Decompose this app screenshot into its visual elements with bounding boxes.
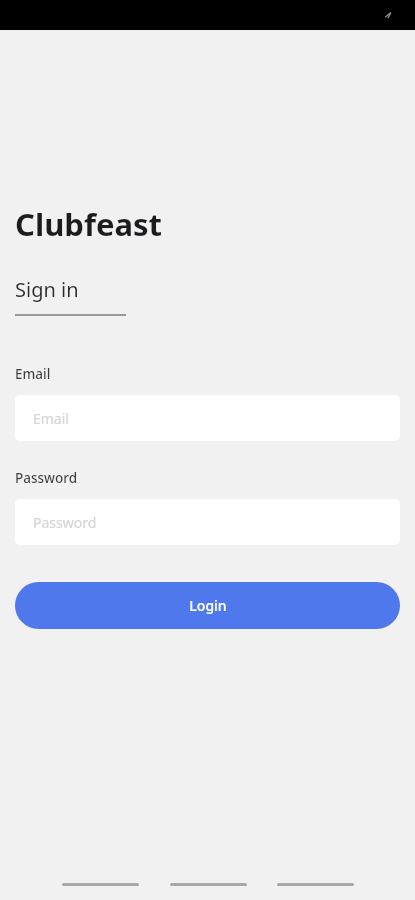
staticText: Email <box>33 409 69 428</box>
button[interactable]: Navigation <box>277 883 354 886</box>
button[interactable]: Login <box>15 582 400 629</box>
staticText: Email <box>15 365 51 383</box>
button[interactable]: Email <box>15 395 400 441</box>
button[interactable]: Password <box>15 499 400 545</box>
staticText: Sign in <box>15 276 79 303</box>
staticText: Clubfeast <box>15 203 162 245</box>
button[interactable]: Navigation <box>62 883 139 886</box>
button[interactable]: Sign in <box>15 276 126 316</box>
staticText: Login <box>189 596 227 615</box>
staticText: Password <box>15 469 78 487</box>
button[interactable]: Navigation <box>170 883 247 886</box>
staticText: Password <box>33 513 97 532</box>
